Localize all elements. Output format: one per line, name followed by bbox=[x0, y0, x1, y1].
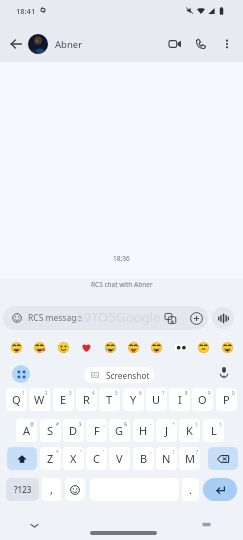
staticText: & bbox=[124, 421, 128, 427]
button[interactable]: Emoji bbox=[52, 335, 75, 359]
staticText: RCS chat with Abner bbox=[91, 280, 153, 289]
button[interactable]: E bbox=[53, 388, 74, 411]
button[interactable]: Emoji bbox=[28, 335, 51, 359]
button[interactable]: Call bbox=[190, 33, 211, 54]
button[interactable]: L bbox=[203, 419, 224, 442]
staticText: G bbox=[115, 423, 124, 438]
staticText: : bbox=[126, 449, 128, 455]
button[interactable]: S bbox=[40, 419, 61, 442]
button[interactable]: Apps bbox=[12, 365, 30, 383]
staticText: H bbox=[139, 423, 148, 438]
button[interactable]: Q bbox=[6, 388, 27, 411]
button[interactable]: Screenshot bbox=[84, 367, 154, 383]
button[interactable]: Video call bbox=[164, 33, 185, 54]
button[interactable]: H bbox=[133, 419, 154, 442]
button[interactable]: T bbox=[99, 388, 120, 411]
button[interactable]: U bbox=[146, 388, 167, 411]
button[interactable]: Shift bbox=[7, 447, 37, 470]
button[interactable]: W bbox=[29, 388, 50, 411]
button[interactable]: Emoji bbox=[122, 335, 145, 359]
button[interactable]: I bbox=[169, 388, 190, 411]
staticText: U bbox=[152, 392, 161, 407]
button[interactable]: Hide keyboard bbox=[25, 516, 44, 535]
staticText: T bbox=[106, 392, 113, 407]
staticText: _ bbox=[103, 421, 105, 427]
button[interactable]: P bbox=[216, 388, 237, 411]
button[interactable]: Enter bbox=[203, 478, 237, 501]
button[interactable]: More options bbox=[216, 33, 237, 54]
button[interactable]: Backspace bbox=[208, 447, 238, 470]
button[interactable]: Emoji bbox=[192, 335, 215, 359]
staticText: ; bbox=[150, 449, 152, 455]
staticText: N bbox=[162, 451, 171, 466]
button[interactable]: Contact photo bbox=[28, 34, 48, 54]
staticText: 18:36 bbox=[113, 254, 130, 263]
staticText: I bbox=[178, 392, 182, 407]
staticText: 2 bbox=[45, 390, 48, 396]
staticText: - bbox=[150, 421, 152, 427]
staticText: $ bbox=[79, 421, 82, 427]
button[interactable]: V bbox=[109, 447, 130, 470]
staticText: Z bbox=[47, 451, 54, 466]
button[interactable]: . bbox=[182, 478, 199, 501]
button[interactable]: R bbox=[76, 388, 97, 411]
staticText: * bbox=[56, 449, 59, 455]
staticText: 8 bbox=[185, 390, 188, 396]
staticText: R bbox=[83, 392, 90, 407]
button[interactable]: Gallery bbox=[162, 310, 178, 326]
button[interactable]: Y bbox=[123, 388, 144, 411]
staticText: M bbox=[185, 451, 195, 466]
staticText: Y bbox=[130, 392, 137, 407]
staticText: 7 bbox=[162, 390, 165, 396]
button[interactable] bbox=[3, 306, 208, 330]
button[interactable]: Voice input bbox=[214, 362, 234, 382]
staticText: # bbox=[56, 421, 59, 427]
button[interactable]: Symbols bbox=[6, 478, 39, 501]
button[interactable]: , bbox=[42, 478, 61, 501]
button[interactable]: A bbox=[16, 419, 37, 442]
button[interactable]: J bbox=[156, 419, 177, 442]
button[interactable]: Emoji bbox=[65, 478, 85, 501]
button[interactable]: G bbox=[109, 419, 130, 442]
staticText: RCS message bbox=[28, 312, 82, 324]
button[interactable]: Z bbox=[40, 447, 61, 470]
staticText: ! bbox=[173, 449, 175, 455]
button[interactable]: K bbox=[179, 419, 200, 442]
staticText: K bbox=[186, 423, 193, 438]
button[interactable]: X bbox=[63, 447, 84, 470]
button[interactable]: Switch keyboard bbox=[197, 515, 216, 534]
button[interactable]: O bbox=[192, 388, 213, 411]
button[interactable]: B bbox=[133, 447, 154, 470]
staticText: E bbox=[60, 392, 67, 407]
button[interactable]: Record audio bbox=[212, 307, 234, 329]
button[interactable]: Emoji bbox=[99, 335, 122, 359]
button[interactable]: F bbox=[86, 419, 107, 442]
staticText: A bbox=[23, 423, 31, 438]
staticText: @ bbox=[30, 421, 35, 427]
staticText: Screenshot bbox=[106, 370, 150, 381]
button[interactable]: Emoji bbox=[5, 335, 28, 359]
staticText: D bbox=[69, 423, 78, 438]
button[interactable]: C bbox=[86, 447, 107, 470]
button[interactable]: D bbox=[63, 419, 84, 442]
staticText: ?123 bbox=[14, 484, 32, 495]
staticText: 18:41 bbox=[16, 6, 36, 16]
staticText: B bbox=[140, 451, 148, 466]
staticText: ( bbox=[196, 421, 198, 427]
staticText: 9 bbox=[208, 390, 211, 396]
staticText: Abner bbox=[55, 38, 83, 51]
button[interactable]: Add attachment bbox=[188, 310, 204, 326]
staticText: 5 bbox=[115, 390, 118, 396]
button[interactable]: M bbox=[179, 447, 200, 470]
button[interactable]: Choose emoji bbox=[9, 310, 25, 326]
staticText: X bbox=[70, 451, 77, 466]
staticText: Q bbox=[12, 392, 21, 407]
button[interactable]: N bbox=[156, 447, 177, 470]
button[interactable]: Emoji bbox=[75, 335, 98, 359]
button[interactable]: Emoji bbox=[216, 335, 239, 359]
button[interactable]: Back bbox=[5, 34, 26, 54]
button[interactable]: Emoji bbox=[169, 335, 192, 359]
staticText: ) bbox=[220, 421, 222, 427]
button[interactable]: Emoji bbox=[145, 335, 168, 359]
